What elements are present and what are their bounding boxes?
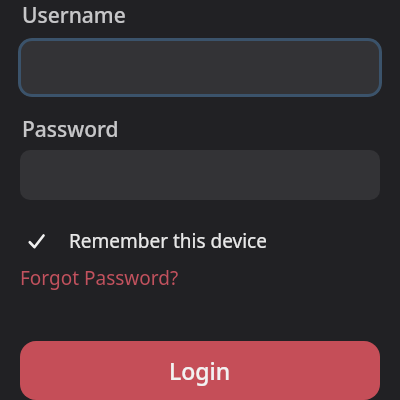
- button[interactable]: [18, 38, 382, 97]
- staticText: Login: [169, 355, 231, 386]
- button[interactable]: Forgot Password?: [20, 265, 179, 291]
- staticText: Remember this device: [69, 228, 267, 254]
- staticText: Password: [22, 115, 119, 144]
- button[interactable]: Login: [20, 341, 380, 400]
- staticText: Username: [22, 1, 126, 30]
- button[interactable]: Remember this device: [29, 228, 267, 254]
